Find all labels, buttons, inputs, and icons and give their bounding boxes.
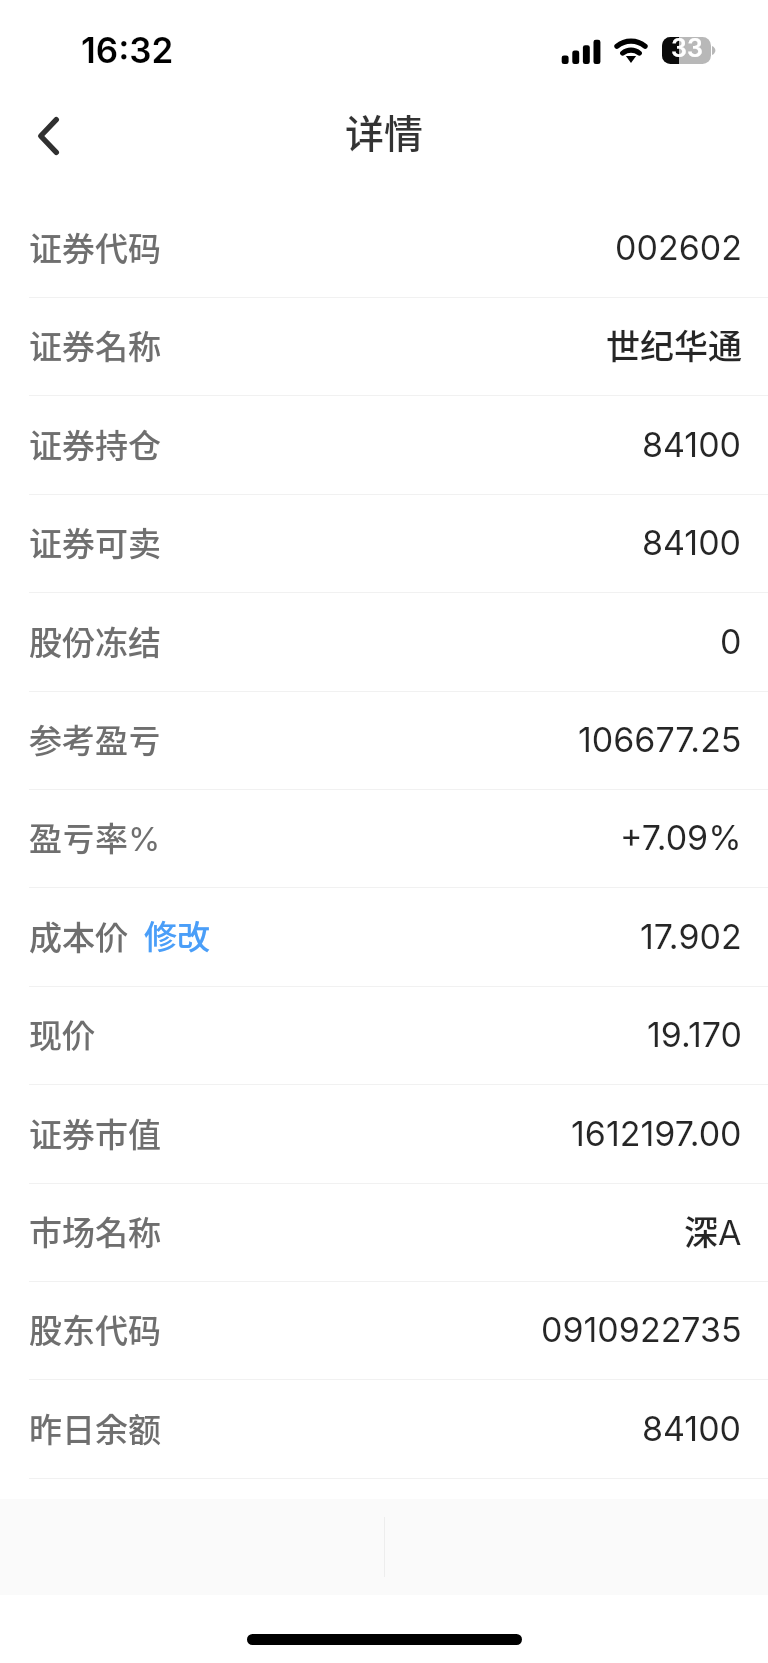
- staticText: 证券持仓: [29, 420, 161, 468]
- staticText: 盈亏率%: [29, 813, 161, 861]
- button[interactable]: 证券代码: [0, 200, 768, 298]
- button[interactable]: Back: [5, 93, 91, 179]
- staticText: 33: [671, 33, 703, 60]
- staticText: 市场名称: [29, 1207, 161, 1255]
- button[interactable]: 市场名称: [0, 1184, 768, 1282]
- staticText: 002602: [615, 227, 742, 268]
- staticText: 1612197.00: [571, 1113, 742, 1154]
- staticText: +7.09%: [620, 817, 742, 858]
- button[interactable]: 盈亏率%: [0, 790, 768, 888]
- staticText: 股份冻结: [29, 617, 161, 665]
- staticText: 106677.25: [578, 719, 742, 760]
- staticText: 证券代码: [29, 223, 161, 271]
- button[interactable]: 证券可卖: [0, 495, 768, 593]
- staticText: 深A: [684, 1206, 742, 1255]
- button[interactable]: 修改: [144, 911, 210, 959]
- staticText: 16:32: [81, 29, 174, 71]
- staticText: 参考盈亏: [29, 715, 161, 763]
- button[interactable]: 证券名称: [0, 298, 768, 396]
- button[interactable]: 股份冻结: [0, 594, 768, 692]
- staticText: 证券市值: [29, 1109, 161, 1157]
- staticText: 证券可卖: [29, 518, 161, 566]
- staticText: 84100: [642, 424, 742, 465]
- staticText: 0: [720, 621, 742, 662]
- staticText: 成本价: [29, 912, 128, 960]
- button[interactable]: 昨日余额: [0, 1381, 768, 1479]
- button[interactable]: 股东代码: [0, 1282, 768, 1380]
- staticText: 19.170: [647, 1014, 742, 1055]
- staticText: 昨日余额: [29, 1404, 161, 1452]
- button[interactable]: 现价: [0, 987, 768, 1085]
- staticText: 17.902: [640, 916, 742, 957]
- staticText: 股东代码: [29, 1305, 161, 1353]
- button[interactable]: 成本价: [0, 889, 768, 987]
- staticText: 84100: [642, 1408, 742, 1449]
- button[interactable]: 证券持仓: [0, 397, 768, 495]
- staticText: 0910922735: [541, 1309, 742, 1350]
- staticText: 现价: [29, 1010, 95, 1058]
- staticText: 84100: [642, 522, 742, 563]
- staticText: 世纪华通: [606, 320, 742, 369]
- button[interactable]: 参考盈亏: [0, 692, 768, 790]
- staticText: 证券名称: [29, 321, 161, 369]
- staticText: 详情: [345, 103, 424, 159]
- button[interactable]: 证券市值: [0, 1086, 768, 1184]
